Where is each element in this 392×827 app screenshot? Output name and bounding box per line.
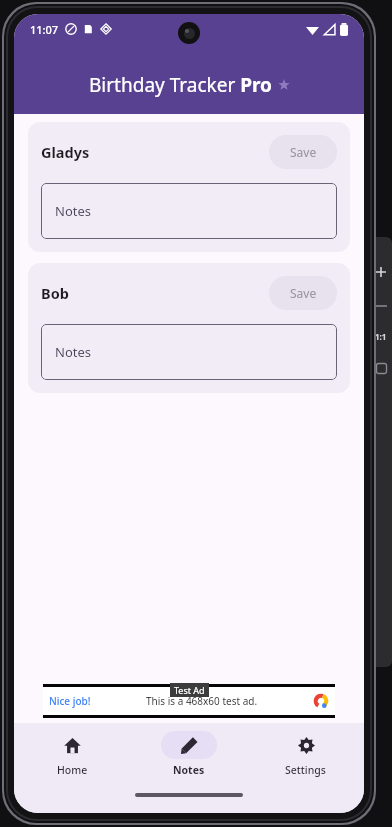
button[interactable]: Notes <box>41 324 337 380</box>
staticText: Home <box>57 763 88 777</box>
staticText: This is a 468x60 test ad. <box>146 694 258 708</box>
staticText: Nice job! <box>49 694 91 708</box>
staticText: Test Ad <box>174 684 205 696</box>
staticText: Birthday Tracker Pro <box>89 72 272 98</box>
button[interactable]: Settings <box>247 723 364 785</box>
staticText: 1:1 <box>375 331 387 342</box>
button[interactable]: Save <box>269 135 337 169</box>
staticText: 11:07 <box>30 22 59 37</box>
staticText: Notes <box>55 202 91 220</box>
button[interactable]: Test advertisement <box>43 687 335 715</box>
button[interactable]: Save <box>269 276 337 310</box>
staticText: Gladys <box>41 142 90 162</box>
button[interactable]: Home <box>14 723 130 785</box>
staticText: Settings <box>285 763 326 777</box>
button[interactable]: Bob <box>28 263 350 393</box>
button[interactable]: Notes <box>130 723 247 785</box>
button[interactable]: Notes <box>41 183 337 239</box>
staticText: Notes <box>173 763 205 777</box>
staticText: Save <box>290 285 317 301</box>
button[interactable]: Gladys <box>28 122 350 252</box>
staticText: Bob <box>41 283 69 303</box>
staticText: Notes <box>55 343 91 361</box>
staticText: Save <box>290 144 317 160</box>
